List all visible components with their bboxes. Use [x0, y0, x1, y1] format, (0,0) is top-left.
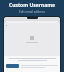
staticText: Custom Username	[0, 2, 64, 9]
button[interactable]: Save username	[6, 64, 19, 68]
staticText: Edit email address	[0, 10, 64, 14]
